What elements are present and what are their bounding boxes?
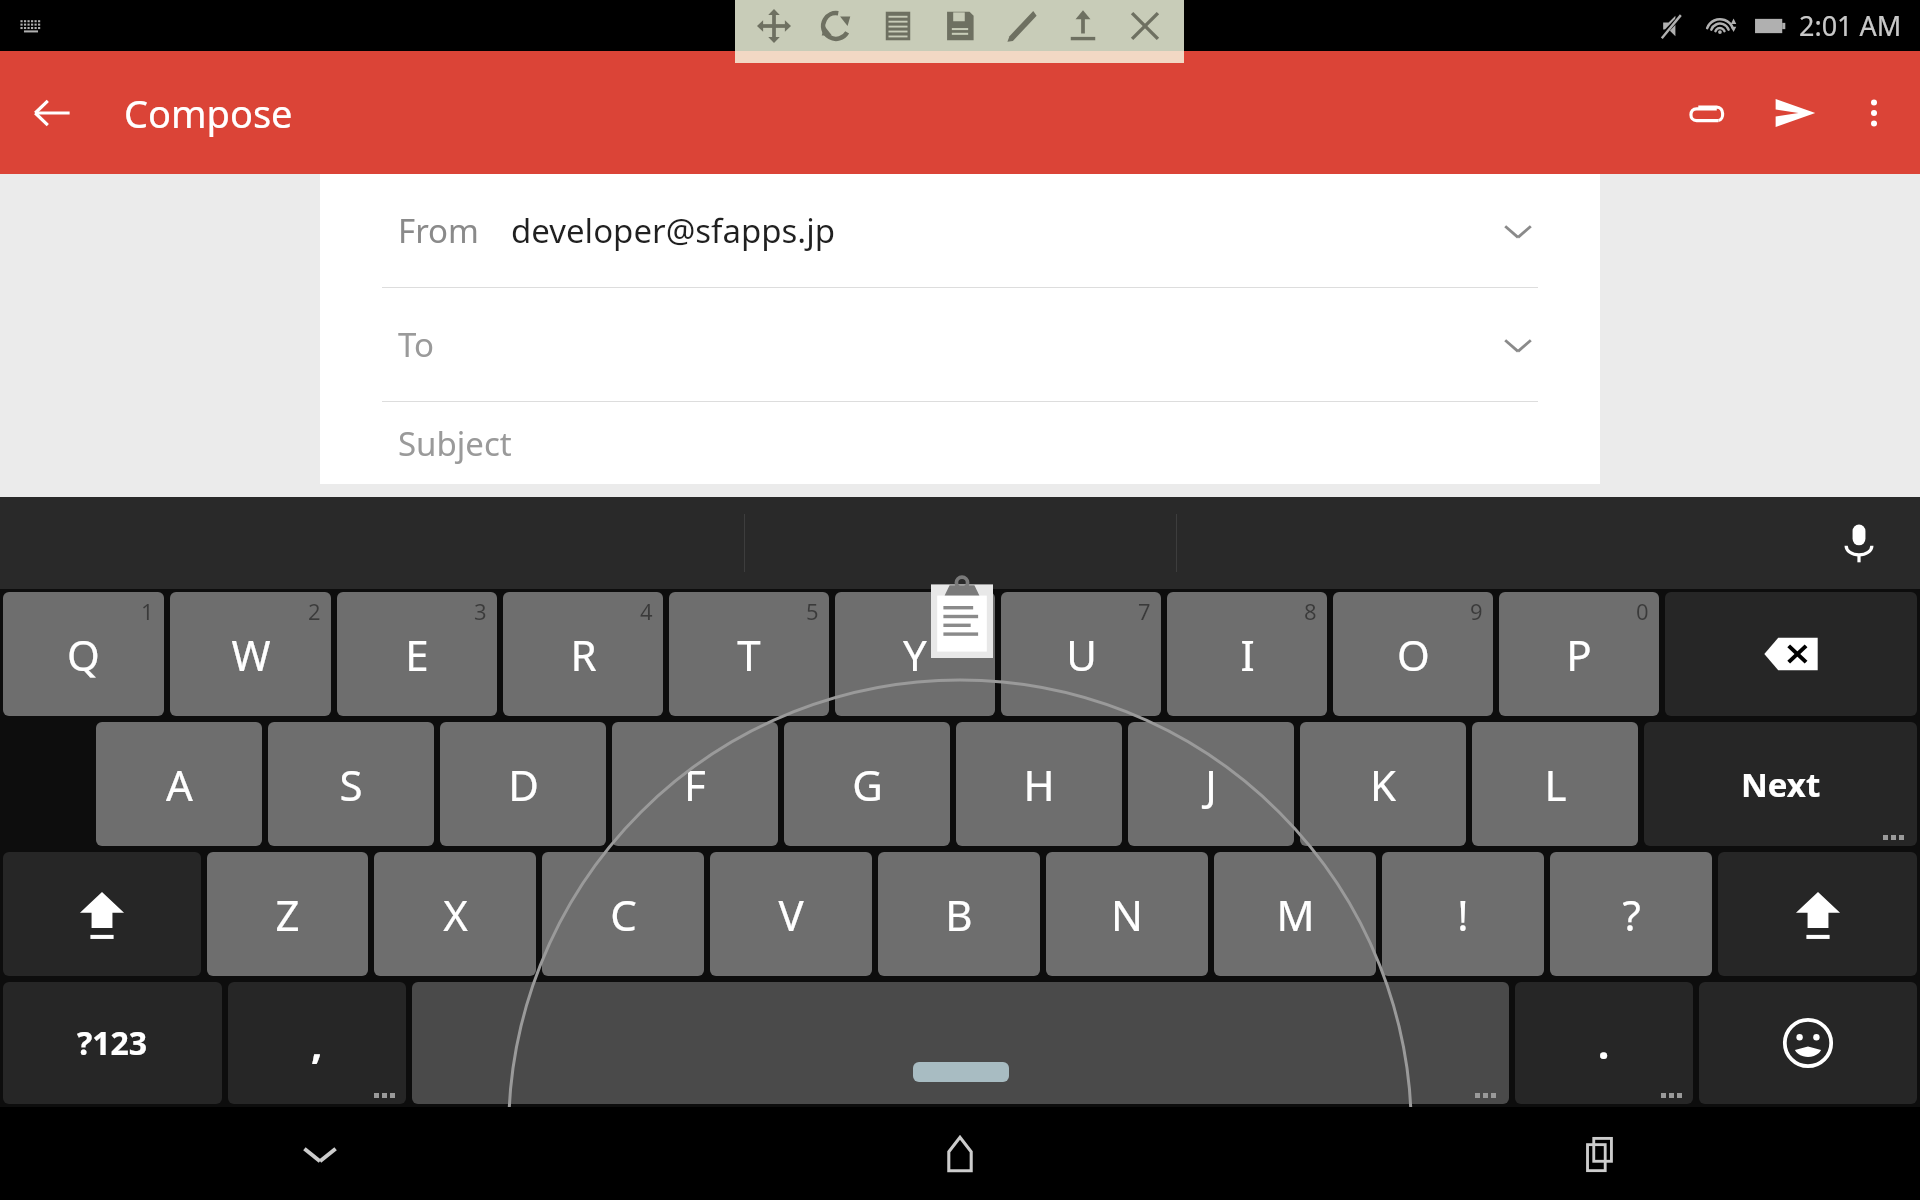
staticText: 8 (1304, 596, 1317, 626)
button[interactable]: Recent apps (1280, 1107, 1920, 1200)
button[interactable]: V (710, 852, 872, 976)
button[interactable]: P (1499, 592, 1659, 716)
button[interactable]: Hide keyboard (0, 1107, 640, 1200)
staticText: ?123 (77, 1021, 148, 1065)
staticText: 6 (972, 596, 985, 626)
button[interactable]: L (1472, 722, 1638, 846)
button[interactable]: C (542, 852, 704, 976)
staticText: 9 (1470, 596, 1483, 626)
staticText: ! (1457, 886, 1469, 943)
staticText: P (1566, 626, 1592, 683)
staticText: Y (903, 626, 927, 683)
button[interactable]: Back (20, 81, 84, 145)
button[interactable]: . (1515, 982, 1693, 1104)
button[interactable]: Y (835, 592, 995, 716)
staticText: D (508, 756, 539, 813)
button[interactable]: F (612, 722, 778, 846)
button[interactable]: Next (1644, 722, 1917, 846)
staticText: Subject (398, 421, 512, 466)
staticText: A (166, 756, 193, 813)
button[interactable]: Refresh (813, 3, 859, 49)
button[interactable]: Edit (998, 3, 1044, 49)
staticText: Q (67, 626, 100, 683)
staticText: C (610, 886, 637, 943)
button[interactable]: Save (937, 3, 983, 49)
staticText: S (339, 756, 363, 813)
button[interactable]: Q (3, 592, 164, 716)
button[interactable]: R (503, 592, 663, 716)
button[interactable]: Home (640, 1107, 1280, 1200)
button[interactable]: D (440, 722, 606, 846)
button[interactable]: ?123 (3, 982, 222, 1104)
staticText: 2:01 AM (1799, 7, 1902, 44)
button[interactable]: ! (1382, 852, 1544, 976)
staticText: Next (1741, 762, 1821, 807)
button[interactable]: Voice input (1824, 508, 1894, 578)
button[interactable]: E (337, 592, 497, 716)
button[interactable]: Subject (320, 402, 1600, 484)
staticText: Compose (124, 87, 293, 139)
button[interactable]: O (1333, 592, 1493, 716)
button[interactable]: Z (207, 852, 368, 976)
button[interactable]: G (784, 722, 950, 846)
staticText: N (1111, 886, 1143, 943)
staticText: O (1397, 626, 1430, 683)
button[interactable]: J (1128, 722, 1294, 846)
button[interactable]: W (170, 592, 331, 716)
button[interactable]: I (1167, 592, 1327, 716)
staticText: L (1544, 756, 1567, 813)
button[interactable]: List (875, 3, 921, 49)
staticText: To (398, 322, 435, 367)
button[interactable]: From (320, 174, 1600, 288)
staticText: . (1598, 1016, 1610, 1070)
staticText: 2 (308, 596, 321, 626)
button[interactable]: Attach (1668, 76, 1742, 150)
button[interactable]: X (374, 852, 536, 976)
button[interactable]: Space (412, 982, 1509, 1104)
button[interactable]: Shift (1718, 852, 1917, 976)
staticText: ? (1622, 886, 1641, 943)
button[interactable]: T (669, 592, 829, 716)
staticText: J (1205, 756, 1217, 813)
staticText: X (443, 886, 468, 943)
staticText: 5 (806, 596, 819, 626)
staticText: G (852, 756, 883, 813)
button[interactable]: , (228, 982, 406, 1104)
staticText: From (398, 208, 479, 253)
button[interactable]: H (956, 722, 1122, 846)
button[interactable]: Upload (1060, 3, 1106, 49)
button[interactable]: N (1046, 852, 1208, 976)
button[interactable]: Move (751, 3, 797, 49)
button[interactable]: Send (1758, 76, 1832, 150)
staticText: 4 (640, 596, 653, 626)
staticText: K (1370, 756, 1396, 813)
staticText: B (945, 886, 973, 943)
button[interactable]: ? (1550, 852, 1712, 976)
staticText: 1 (141, 596, 154, 626)
button[interactable]: M (1214, 852, 1376, 976)
button[interactable]: S (268, 722, 434, 846)
button[interactable]: Backspace (1665, 592, 1917, 716)
button[interactable]: A (96, 722, 262, 846)
button[interactable]: Shift (3, 852, 201, 976)
staticText: V (778, 886, 804, 943)
button[interactable]: Emoji (1699, 982, 1917, 1104)
staticText: 0 (1636, 596, 1649, 626)
staticText: U (1066, 626, 1097, 683)
staticText: T (737, 626, 761, 683)
button[interactable]: Close (1122, 3, 1168, 49)
staticText: developer@sfapps.jp (511, 208, 836, 253)
staticText: E (405, 626, 429, 683)
button[interactable]: K (1300, 722, 1466, 846)
staticText: W (231, 626, 271, 683)
button[interactable]: More options (1842, 81, 1906, 145)
staticText: , (311, 1016, 323, 1070)
button[interactable]: B (878, 852, 1040, 976)
staticText: Z (275, 886, 300, 943)
button[interactable]: U (1001, 592, 1161, 716)
staticText: F (684, 756, 706, 813)
staticText: H (1023, 756, 1055, 813)
staticText: 3 (474, 596, 487, 626)
staticText: I (1240, 626, 1255, 683)
button[interactable]: To (320, 288, 1600, 402)
